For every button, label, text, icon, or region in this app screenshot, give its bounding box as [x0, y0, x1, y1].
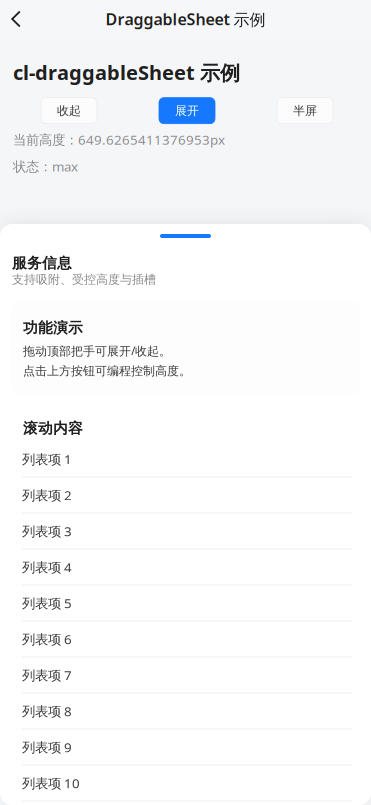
staticText: 点击上方按钮可编程控制高度。 — [23, 364, 191, 378]
staticText: 当前高度：649.6265411376953px — [13, 131, 225, 148]
button[interactable]: 列表项 6 — [22, 621, 352, 657]
staticText: 列表项 3 — [22, 522, 72, 540]
button[interactable]: 列表项 3 — [22, 513, 352, 549]
staticText: 展开 — [175, 103, 199, 118]
button[interactable]: 半屏 — [277, 98, 333, 124]
staticText: 状态：max — [13, 157, 78, 175]
staticText: 半屏 — [293, 103, 317, 118]
button[interactable]: 列表项 4 — [22, 549, 352, 585]
staticText: 列表项 1 — [22, 450, 72, 468]
button[interactable]: 列表项 2 — [22, 477, 352, 513]
staticText: 服务信息 — [12, 254, 72, 272]
button[interactable]: 列表项 9 — [22, 729, 352, 765]
staticText: 支持吸附、受控高度与插槽 — [12, 272, 156, 287]
staticText: 列表项 5 — [22, 594, 72, 612]
staticText: 功能演示 — [23, 319, 83, 337]
staticText: 滚动内容 — [23, 419, 83, 437]
staticText: 列表项 10 — [22, 774, 80, 792]
staticText: DraggableSheet 示例 — [105, 8, 265, 30]
staticText: 列表项 9 — [22, 738, 72, 756]
staticText: 列表项 6 — [22, 630, 72, 648]
staticText: 收起 — [57, 103, 81, 118]
button[interactable]: 展开 — [159, 98, 215, 124]
button[interactable]: 收起 — [41, 98, 97, 124]
button[interactable]: 列表项 8 — [22, 693, 352, 729]
button[interactable]: 列表项 1 — [22, 441, 352, 477]
button[interactable]: Back — [0, 0, 32, 38]
button[interactable]: 列表项 7 — [22, 657, 352, 693]
staticText: 列表项 8 — [22, 702, 72, 720]
staticText: 列表项 2 — [22, 486, 72, 504]
button[interactable]: 列表项 10 — [22, 765, 352, 801]
staticText: 拖动顶部把手可展开/收起。 — [23, 343, 171, 359]
button[interactable]: 列表项 5 — [22, 585, 352, 621]
staticText: cl-draggableSheet 示例 — [13, 59, 240, 86]
staticText: 列表项 4 — [22, 558, 72, 576]
staticText: 列表项 7 — [22, 666, 72, 684]
